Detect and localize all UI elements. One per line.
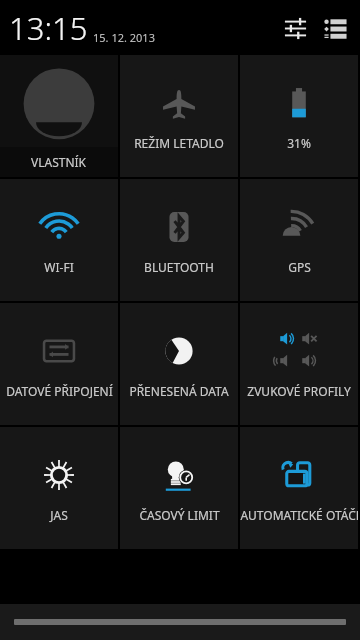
staticText: JAS [50,507,68,523]
staticText: ZVUKOVÉ PROFILY [247,383,351,399]
staticText: REŽIM LETADLO [134,135,224,151]
staticText: 13:15 [9,7,88,49]
button[interactable]: ČASOVÝ LIMIT [120,427,238,549]
staticText: ČASOVÝ LIMIT [139,507,220,523]
button[interactable]: VLASTNÍK [0,55,118,177]
staticText: VLASTNÍK [31,154,87,170]
staticText: AUTOMATICKÉ OTÁČENÍ [240,507,358,523]
button[interactable]: Notifications [318,11,352,45]
staticText: WI-FI [44,259,74,275]
button[interactable]: AUTOMATICKÉ OTÁČENÍ [240,427,358,549]
button[interactable]: JAS [0,427,118,549]
button[interactable]: DATOVÉ PŘIPOJENÍ [0,303,118,425]
button[interactable]: GPS [240,179,358,301]
staticText: DATOVÉ PŘIPOJENÍ [6,383,113,399]
button[interactable]: WI-FI [0,179,118,301]
button[interactable]: PŘENESENÁ DATA [120,303,238,425]
button[interactable]: Close quick settings [0,604,360,640]
staticText: GPS [288,259,311,275]
staticText: BLUETOOTH [144,259,214,275]
button[interactable]: 31% [240,55,358,177]
button[interactable]: Quick settings [278,11,312,45]
button[interactable]: REŽIM LETADLO [120,55,238,177]
staticText: PŘENESENÁ DATA [129,383,229,399]
staticText: 31% [287,135,311,151]
staticText: 15. 12. 2013 [93,30,155,45]
button[interactable]: ZVUKOVÉ PROFILY [240,303,358,425]
button[interactable]: BLUETOOTH [120,179,238,301]
